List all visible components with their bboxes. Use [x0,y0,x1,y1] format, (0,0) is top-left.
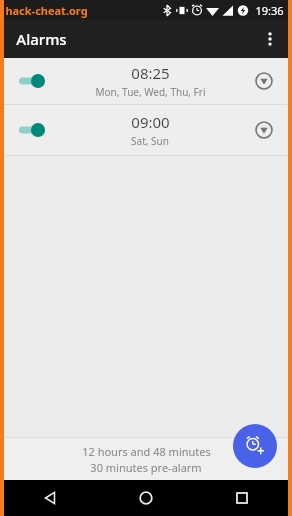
button[interactable]: More options [254,23,286,55]
button[interactable]: Add alarm [233,424,277,468]
button[interactable]: Expand alarm [240,58,288,104]
staticText: 12 hours and 48 minutes [82,444,211,459]
button[interactable]: Toggle alarm [4,58,60,104]
staticText: hack-cheat.org [5,3,88,18]
staticText: Mon, Tue, Wed, Thu, Fri [95,85,206,99]
button[interactable]: Recent apps [222,480,262,516]
staticText: 30 minutes pre-alarm [90,460,202,475]
button[interactable]: Home [126,480,166,516]
button[interactable]: Toggle alarm [4,105,288,155]
staticText: 19:36 [255,3,284,18]
staticText: Sat, Sun [131,134,169,148]
button[interactable]: Back [30,480,70,516]
staticText: Alarms [16,29,67,49]
button[interactable]: Toggle alarm [4,58,288,104]
staticText: 09:00 [131,112,170,132]
button[interactable]: Toggle alarm [4,105,60,155]
button[interactable]: Expand alarm [240,105,288,155]
staticText: 08:25 [131,63,170,83]
